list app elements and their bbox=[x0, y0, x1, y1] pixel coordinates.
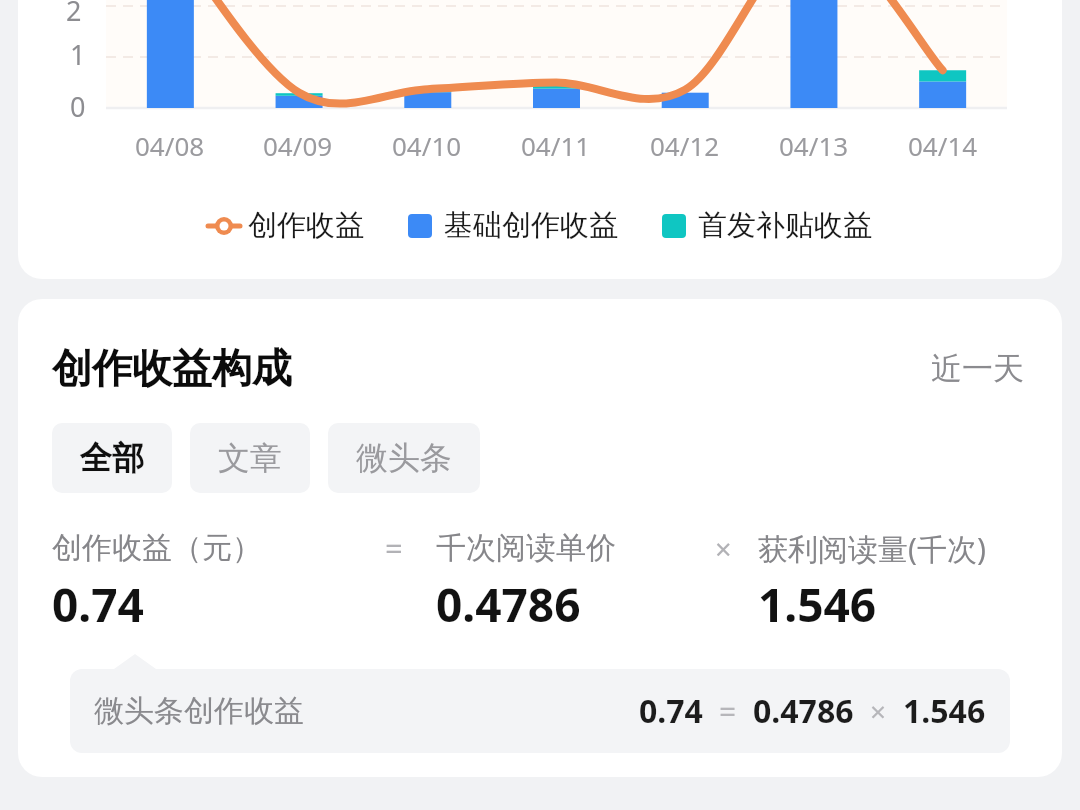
staticText: 1 bbox=[70, 36, 86, 73]
staticText: 首发补贴收益 bbox=[698, 207, 872, 244]
staticText: 04/10 bbox=[392, 128, 462, 163]
button[interactable]: 微头条创作收益 bbox=[70, 669, 1010, 753]
staticText: 全部 bbox=[80, 438, 144, 478]
staticText: 04/14 bbox=[908, 128, 978, 163]
staticText: 创作收益 bbox=[248, 207, 364, 244]
staticText: 基础创作收益 bbox=[444, 207, 618, 244]
staticText: × bbox=[870, 692, 887, 730]
staticText: × bbox=[715, 529, 732, 568]
staticText: 文章 bbox=[218, 438, 282, 478]
staticText: 0.74 bbox=[639, 689, 703, 733]
staticText: 微头条创作收益 bbox=[94, 692, 304, 730]
staticText: = bbox=[719, 691, 737, 732]
staticText: 04/08 bbox=[135, 128, 205, 163]
staticText: 微头条 bbox=[356, 438, 452, 478]
staticText: 0 bbox=[70, 88, 86, 125]
button[interactable]: 微头条 bbox=[328, 423, 480, 493]
button[interactable]: 全部 bbox=[52, 423, 172, 493]
staticText: 04/11 bbox=[521, 128, 591, 163]
staticText: 04/09 bbox=[263, 128, 333, 163]
staticText: 创作收益构成 bbox=[52, 343, 292, 393]
staticText: 创作收益（元） bbox=[52, 529, 262, 567]
staticText: 1.546 bbox=[758, 573, 877, 636]
staticText: 0.4786 bbox=[436, 573, 581, 636]
button[interactable]: 近一天 bbox=[927, 345, 1028, 392]
staticText: 获利阅读量(千次) bbox=[758, 528, 986, 569]
staticText: 0.74 bbox=[52, 573, 144, 636]
staticText: = bbox=[385, 527, 403, 569]
staticText: 04/13 bbox=[779, 128, 849, 163]
staticText: 2 bbox=[66, 0, 82, 29]
staticText: 0.4786 bbox=[753, 689, 854, 733]
staticText: 千次阅读单价 bbox=[436, 529, 616, 567]
staticText: 1.546 bbox=[903, 689, 986, 733]
button[interactable]: 文章 bbox=[190, 423, 310, 493]
staticText: 04/12 bbox=[650, 128, 720, 163]
staticText: 近一天 bbox=[931, 349, 1024, 388]
